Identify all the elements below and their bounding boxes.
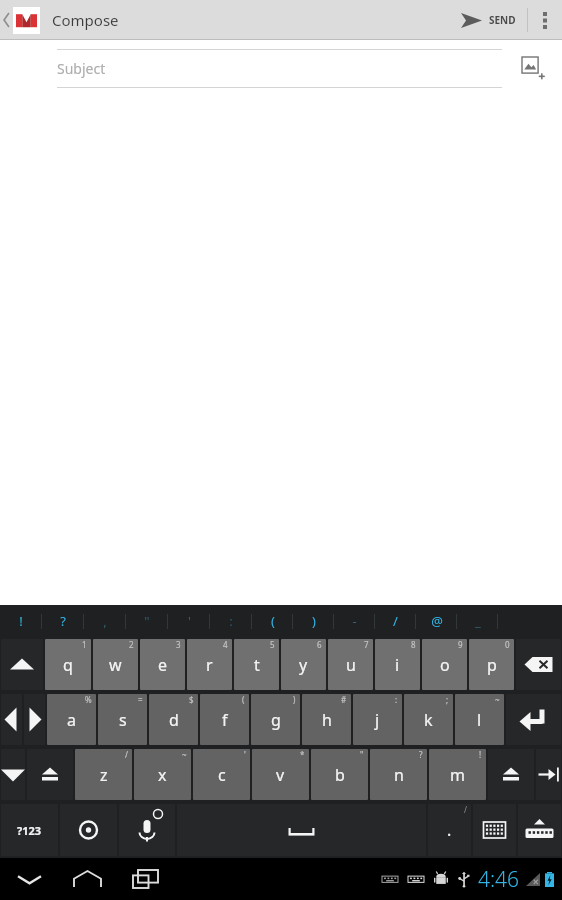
button[interactable]: Tab (536, 749, 561, 800)
button[interactable]: Move down (1, 749, 25, 800)
staticText: . (447, 819, 452, 841)
staticText: 6 (317, 639, 322, 650)
button[interactable]: $ (149, 694, 198, 745)
button[interactable]: ? (42, 605, 84, 637)
button[interactable]: Attach picture (504, 50, 562, 87)
button[interactable]: Switch keyboard (518, 804, 561, 856)
staticText: l (477, 709, 482, 731)
button[interactable]: ! (429, 749, 486, 800)
staticText: ? (419, 749, 423, 760)
button[interactable]: ; (404, 694, 453, 745)
button[interactable]: 1 (45, 639, 91, 690)
staticText: Subject (57, 59, 106, 78)
button[interactable]: Recent apps (116, 858, 174, 900)
button[interactable]: " (311, 749, 368, 800)
button[interactable]: ! (0, 605, 42, 637)
button[interactable]: _ (457, 605, 498, 637)
button[interactable]: ) (251, 694, 300, 745)
button[interactable]: 8 (375, 639, 420, 690)
staticText: 4 (223, 639, 228, 650)
staticText: ? (60, 612, 66, 630)
button[interactable]: 5 (234, 639, 279, 690)
button[interactable]: ' (193, 749, 250, 800)
staticText: SEND (489, 13, 516, 27)
button[interactable]: 6 (281, 639, 326, 690)
staticText: x (158, 764, 167, 786)
button[interactable]: 2 (93, 639, 138, 690)
button[interactable]: / (375, 605, 416, 637)
staticText: m (450, 764, 465, 786)
button[interactable]: 0 (469, 639, 514, 690)
button[interactable]: ~ (134, 749, 191, 800)
staticText: / (125, 749, 128, 760)
staticText: ' (244, 749, 246, 760)
button[interactable]: Emoji (473, 804, 516, 856)
staticText: c (218, 764, 226, 786)
button[interactable]: Navigate up (0, 0, 44, 40)
staticText: / (393, 612, 398, 630)
button[interactable]: = (98, 694, 147, 745)
staticText: w (109, 654, 122, 676)
button[interactable]: ~ (455, 694, 504, 745)
button[interactable]: SEND (450, 0, 527, 40)
button[interactable]: ' (168, 605, 210, 637)
staticText: p (487, 654, 497, 676)
button[interactable]: 7 (328, 639, 373, 690)
staticText: n (394, 764, 404, 786)
button[interactable]: ( (200, 694, 249, 745)
button[interactable]: ? (370, 749, 427, 800)
button[interactable]: Home (58, 858, 116, 900)
button[interactable]: Delete (516, 639, 561, 690)
button[interactable]: Settings (60, 804, 117, 856)
button[interactable]: / (428, 804, 471, 856)
button[interactable]: " (126, 605, 168, 637)
staticText: b (335, 764, 345, 786)
staticText: 9 (458, 639, 463, 650)
staticText: ! (19, 612, 23, 630)
button[interactable]: Move right (24, 694, 45, 745)
button[interactable]: # (302, 694, 351, 745)
staticText: 3 (176, 639, 181, 650)
button[interactable]: * (252, 749, 309, 800)
button[interactable]: ?123 (1, 804, 58, 856)
button[interactable]: @ (416, 605, 457, 637)
staticText: = (138, 694, 143, 705)
button[interactable]: : (210, 605, 252, 637)
button[interactable]: : (353, 694, 402, 745)
staticText: k (424, 709, 433, 731)
button[interactable]: Subject (0, 50, 504, 87)
button[interactable]: - (334, 605, 375, 637)
staticText: 1 (82, 639, 87, 650)
staticText: 0 (505, 639, 510, 650)
staticText: ( (271, 612, 275, 630)
button[interactable]: / (75, 749, 132, 800)
staticText: _ (475, 612, 481, 630)
button[interactable]: Enter (506, 694, 561, 745)
staticText: " (360, 749, 364, 760)
button[interactable]: Shift (27, 749, 73, 800)
button[interactable]: ( (252, 605, 293, 637)
button[interactable]: 4 (187, 639, 232, 690)
button[interactable]: More options (528, 0, 562, 40)
button[interactable]: 3 (140, 639, 185, 690)
button[interactable]: Shift (1, 639, 43, 690)
staticText: " (144, 612, 150, 630)
button[interactable]: Shift (488, 749, 534, 800)
button[interactable]: Hide keyboard (0, 858, 58, 900)
button[interactable]: % (47, 694, 96, 745)
staticText: 8 (411, 639, 416, 650)
staticText: q (63, 654, 73, 676)
staticText: ) (312, 612, 316, 630)
button[interactable]: Space (177, 804, 426, 856)
button[interactable]: Voice input (119, 804, 175, 856)
staticText: e (158, 654, 168, 676)
staticText: v (276, 764, 285, 786)
staticText: ! (479, 749, 482, 760)
button[interactable]: ) (293, 605, 334, 637)
staticText: g (271, 709, 281, 731)
button[interactable]: , (84, 605, 126, 637)
staticText: : (395, 694, 398, 705)
button[interactable]: Move left (1, 694, 22, 745)
button[interactable]: 9 (422, 639, 467, 690)
staticText: o (440, 654, 450, 676)
